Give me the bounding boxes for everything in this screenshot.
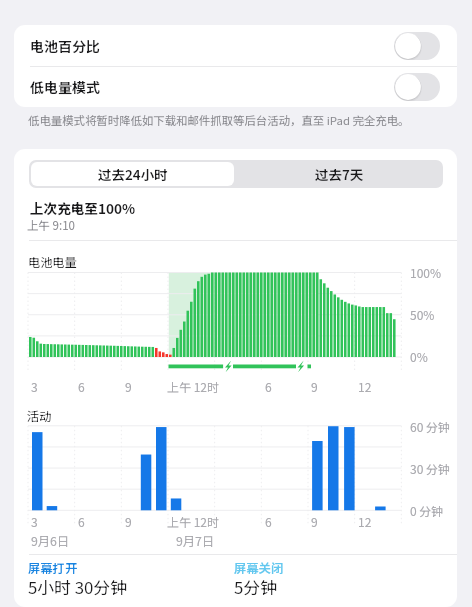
staticText: 3 xyxy=(31,378,38,395)
button[interactable]: 过去7天 xyxy=(236,160,443,188)
staticText: 上午 12时 xyxy=(167,513,220,530)
staticText: 电池电量 xyxy=(28,253,77,271)
staticText: 0 分钟 xyxy=(410,502,444,519)
staticText: 12 xyxy=(358,378,372,395)
staticText: 9 xyxy=(125,378,132,395)
staticText: 9 xyxy=(311,513,318,530)
button[interactable]: 屏幕关闭 xyxy=(234,559,354,599)
staticText: 9 xyxy=(311,378,318,395)
button[interactable]: Toggle off xyxy=(394,32,440,60)
staticText: 6 xyxy=(265,378,272,395)
staticText: 屏幕关闭 xyxy=(234,559,284,577)
button[interactable]: 屏幕打开 xyxy=(28,559,148,599)
staticText: 30 分钟 xyxy=(410,460,451,477)
staticText: 过去24小时 xyxy=(98,164,168,184)
staticText: 12 xyxy=(358,513,372,530)
button[interactable]: 低电量模式 xyxy=(14,67,457,107)
button[interactable]: Toggle off xyxy=(394,73,440,101)
staticText: 电池百分比 xyxy=(30,36,100,56)
staticText: 100% xyxy=(410,264,442,281)
staticText: 9月6日 xyxy=(31,532,70,550)
staticText: 60 分钟 xyxy=(410,418,451,435)
staticText: 低电量模式将暂时降低如下载和邮件抓取等后台活动，直至 iPad 完全充电。 xyxy=(28,112,410,129)
button[interactable]: 过去24小时 xyxy=(31,162,234,186)
staticText: 50% xyxy=(410,306,435,323)
staticText: 屏幕打开 xyxy=(28,559,78,577)
button[interactable]: 电池百分比 xyxy=(14,25,457,66)
staticText: 上次充电至100% xyxy=(30,198,136,218)
staticText: 活动 xyxy=(27,407,52,425)
staticText: 5分钟 xyxy=(234,575,277,599)
staticText: 过去7天 xyxy=(315,164,364,184)
staticText: 9月7日 xyxy=(176,532,215,550)
staticText: 9 xyxy=(125,513,132,530)
staticText: 上午 9:10 xyxy=(27,217,75,234)
staticText: 3 xyxy=(31,513,38,530)
staticText: 0% xyxy=(410,348,428,365)
staticText: 6 xyxy=(78,513,85,530)
staticText: 低电量模式 xyxy=(30,77,100,97)
staticText: 6 xyxy=(78,378,85,395)
staticText: 6 xyxy=(265,513,272,530)
staticText: 5小时 30分钟 xyxy=(28,575,127,599)
staticText: 上午 12时 xyxy=(167,378,220,395)
